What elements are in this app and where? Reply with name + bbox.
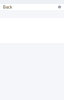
staticText: Back [3,4,12,10]
